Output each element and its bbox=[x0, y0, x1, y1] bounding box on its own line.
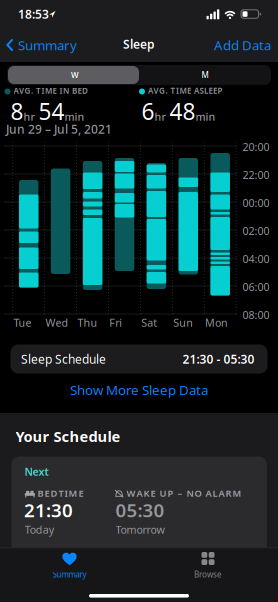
staticText: Jun 29 – Jul 5, 2021 bbox=[6, 121, 112, 137]
staticText: WAKE UP – NO ALARM bbox=[126, 487, 241, 499]
staticText: 48 bbox=[169, 96, 195, 126]
staticText: Tomorrow bbox=[115, 523, 164, 537]
staticText: Add Data bbox=[214, 36, 271, 54]
staticText: 8 bbox=[10, 96, 23, 126]
button[interactable]: Sleep Schedule bbox=[10, 344, 267, 373]
staticText: Fri bbox=[109, 315, 122, 330]
staticText: 22:00 bbox=[242, 168, 269, 182]
staticText: Mon bbox=[205, 315, 228, 330]
staticText: min bbox=[64, 110, 84, 124]
staticText: hr bbox=[154, 110, 166, 124]
button[interactable]: Next bbox=[11, 456, 267, 555]
staticText: Summary bbox=[52, 569, 86, 580]
staticText: BEDTIME bbox=[37, 487, 83, 499]
staticText: AVG. TIME ASLEEP bbox=[148, 85, 222, 96]
staticText: hr bbox=[23, 110, 35, 124]
staticText: Wed bbox=[45, 315, 68, 330]
staticText: Next bbox=[24, 464, 48, 479]
button[interactable]: Summary bbox=[6, 28, 77, 62]
button[interactable]: Summary bbox=[0, 547, 139, 587]
staticText: Sun bbox=[173, 315, 193, 330]
button[interactable] bbox=[8, 66, 139, 84]
staticText: Thu bbox=[77, 315, 97, 330]
staticText: 02:00 bbox=[242, 224, 269, 238]
staticText: Sleep Schedule bbox=[21, 351, 106, 367]
button[interactable]: M bbox=[145, 66, 265, 84]
staticText: min bbox=[195, 110, 215, 124]
staticText: 00:00 bbox=[242, 196, 269, 210]
staticText: Today bbox=[25, 523, 54, 537]
staticText: Sat bbox=[141, 315, 157, 330]
button[interactable]: Add Data bbox=[181, 28, 271, 62]
staticText: Your Schedule bbox=[15, 427, 120, 446]
staticText: 06:00 bbox=[242, 280, 269, 294]
staticText: 21:30 bbox=[24, 498, 73, 522]
staticText: 18:53 bbox=[18, 6, 49, 22]
staticText: 20:00 bbox=[242, 140, 269, 154]
staticText: Summary bbox=[18, 36, 77, 54]
button[interactable]: Show More Sleep Data bbox=[49, 381, 229, 399]
button[interactable]: Browse bbox=[139, 547, 278, 587]
staticText: 6 bbox=[141, 96, 154, 126]
staticText: W bbox=[71, 70, 79, 80]
staticText: 05:30 bbox=[115, 498, 164, 522]
staticText: 54 bbox=[38, 96, 64, 126]
staticText: 21:30 - 05:30 bbox=[182, 351, 254, 367]
staticText: AVG. TIME IN BED bbox=[13, 85, 88, 96]
staticText: 08:00 bbox=[242, 308, 269, 322]
staticText: Sleep bbox=[123, 36, 155, 52]
staticText: Browse bbox=[194, 569, 222, 580]
staticText: M bbox=[201, 70, 208, 80]
staticText: Tue bbox=[14, 315, 32, 330]
staticText: 04:00 bbox=[242, 252, 269, 266]
staticText: Show More Sleep Data bbox=[70, 381, 208, 399]
